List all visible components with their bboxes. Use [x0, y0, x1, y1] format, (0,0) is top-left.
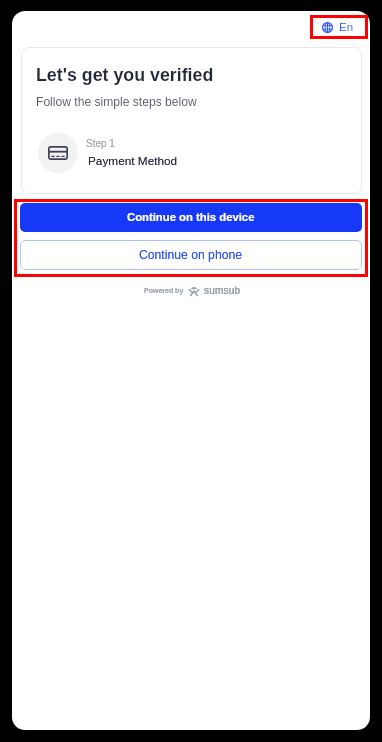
button[interactable]: Continue on phone [20, 240, 362, 270]
staticText: Continue on this device [127, 211, 255, 224]
other: Change language [322, 22, 333, 33]
button[interactable]: Change language [312, 15, 364, 40]
staticText: Continue on phone [139, 248, 243, 262]
staticText: Step 1 [86, 138, 115, 149]
staticText: Continue on phone [139, 248, 243, 262]
staticText: Follow the simple steps below [36, 95, 197, 109]
staticText: Let's get you verified [36, 65, 214, 85]
staticText: Powered by [144, 287, 184, 295]
staticText: En [339, 21, 354, 34]
staticText: sumsub [204, 285, 241, 296]
staticText: Payment Method [88, 154, 178, 167]
button[interactable]: Continue on this device [20, 203, 362, 232]
staticText: Payment Method [88, 154, 178, 167]
staticText: sumsub [204, 285, 241, 296]
